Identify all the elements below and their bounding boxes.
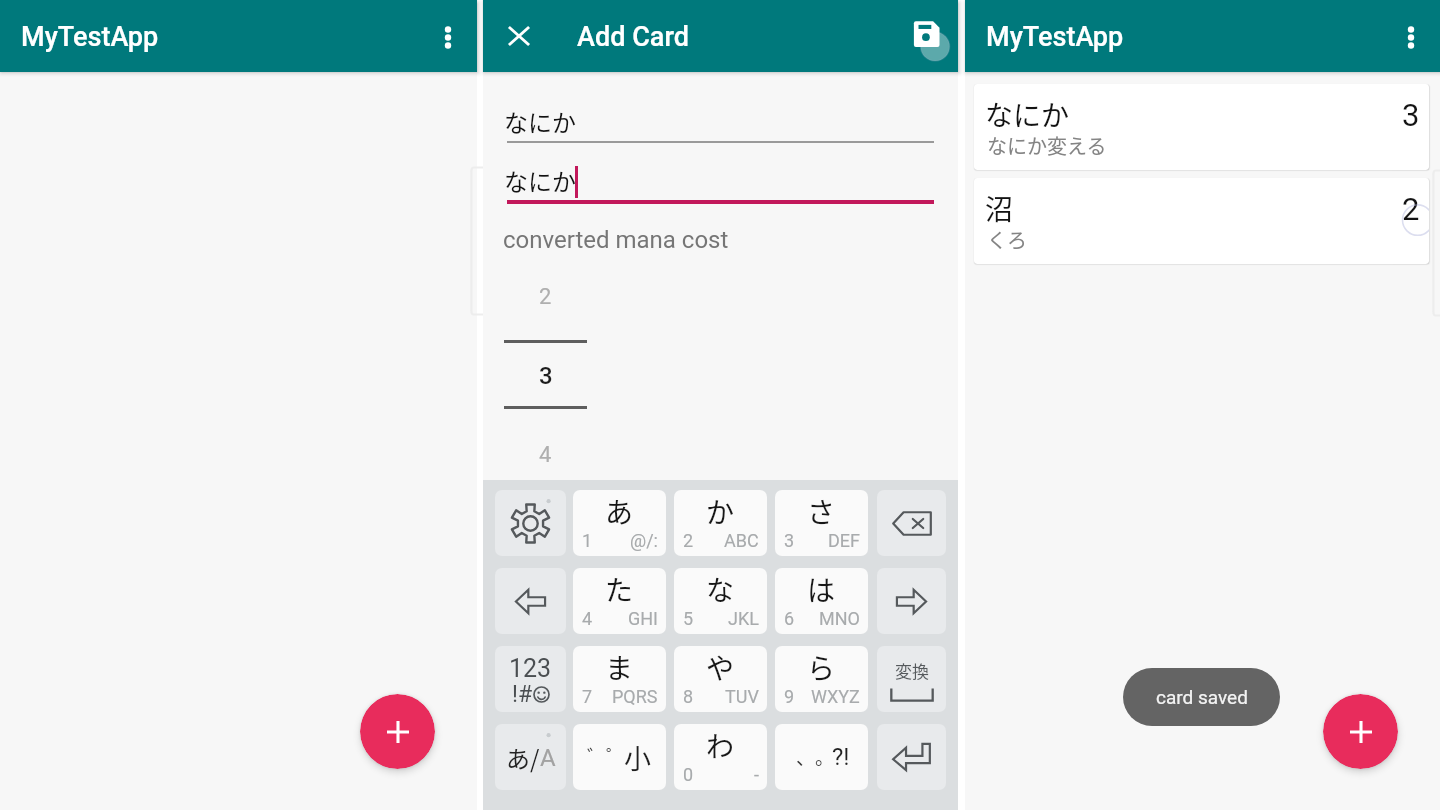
staticText: 小 <box>624 738 651 777</box>
button[interactable]: Enter <box>877 724 946 790</box>
button[interactable]: More options <box>1383 8 1439 64</box>
staticText: !# <box>512 681 533 708</box>
staticText: 0 <box>683 764 694 785</box>
staticText: TUV <box>725 686 759 707</box>
button[interactable]: Keyboard settings <box>495 490 566 556</box>
staticText: 3 <box>539 362 553 390</box>
button[interactable]: Convert <box>877 646 946 712</box>
button[interactable]: Numbers and symbols <box>495 646 566 712</box>
button[interactable]: ゛゜ <box>573 724 666 790</box>
button[interactable]: Close <box>495 12 543 60</box>
staticText: ま <box>605 647 634 688</box>
button[interactable]: 沼 <box>974 178 1429 264</box>
staticText: MyTestApp <box>21 21 159 53</box>
button[interactable]: Add <box>360 694 435 769</box>
button[interactable]: Switch input mode <box>495 724 566 790</box>
button[interactable]: や <box>674 646 767 712</box>
staticText: card saved <box>1156 686 1248 708</box>
staticText: わ <box>706 725 735 766</box>
button[interactable]: Save <box>905 15 958 71</box>
staticText: なにか <box>504 163 576 198</box>
staticText: PQRS <box>612 686 658 707</box>
button[interactable]: Move cursor right <box>877 568 946 634</box>
staticText: 4 <box>582 608 593 629</box>
staticText: くろ <box>987 225 1027 254</box>
staticText: 2 <box>683 530 694 551</box>
staticText: ゛゜ <box>587 742 626 770</box>
staticText: @/: <box>630 530 658 551</box>
button[interactable]: な <box>674 568 767 634</box>
staticText: Add Card <box>577 21 689 53</box>
staticText: ら <box>807 647 836 688</box>
button[interactable]: あ <box>573 490 666 556</box>
button[interactable]: 2 <box>504 280 587 338</box>
button[interactable]: なにか <box>974 84 1429 170</box>
staticText: な <box>706 569 735 610</box>
button[interactable]: さ <box>775 490 868 556</box>
button[interactable]: ら <box>775 646 868 712</box>
staticText: WXYZ <box>811 686 860 707</box>
staticText: - <box>754 764 759 785</box>
staticText: GHI <box>628 608 658 629</box>
staticText: あ/ <box>506 740 540 775</box>
staticText: なにか <box>985 94 1070 135</box>
button[interactable]: ま <box>573 646 666 712</box>
staticText: 3 <box>784 530 795 551</box>
staticText: 変換 <box>895 658 929 683</box>
staticText: 7 <box>582 686 593 707</box>
staticText: なにか変える <box>987 131 1107 160</box>
button[interactable]: Add <box>1323 694 1398 769</box>
staticText: MyTestApp <box>986 21 1124 53</box>
button[interactable]: Backspace <box>877 490 946 556</box>
staticText: あ <box>605 491 634 532</box>
staticText: や <box>706 647 735 688</box>
staticText: converted mana cost <box>503 226 729 254</box>
staticText: 4 <box>539 442 552 468</box>
button[interactable]: は <box>775 568 868 634</box>
staticText: MNO <box>819 608 860 629</box>
staticText: は <box>807 569 836 610</box>
staticText: A <box>540 744 556 772</box>
staticText: 123 <box>509 654 552 683</box>
staticText: 9 <box>784 686 795 707</box>
staticText: さ <box>807 491 836 532</box>
button[interactable]: か <box>674 490 767 556</box>
button[interactable]: 、。 <box>775 724 868 790</box>
button[interactable]: 3 <box>504 345 587 409</box>
staticText: 2 <box>1402 191 1420 227</box>
staticText: ABC <box>724 530 759 551</box>
staticText: 3 <box>1402 97 1420 133</box>
button[interactable]: た <box>573 568 666 634</box>
button[interactable]: Move cursor left <box>495 568 566 634</box>
staticText: 8 <box>683 686 694 707</box>
staticText: 沼 <box>985 188 1014 229</box>
staticText: 、。 <box>796 743 835 771</box>
staticText: DEF <box>828 530 860 551</box>
staticText: 1 <box>582 530 593 551</box>
staticText: 5 <box>683 608 694 629</box>
staticText: JKL <box>728 608 759 629</box>
staticText: か <box>706 491 735 532</box>
button[interactable]: 4 <box>504 411 587 471</box>
staticText: た <box>605 569 634 610</box>
staticText: 2 <box>539 284 552 310</box>
staticText: なにか <box>504 104 576 139</box>
button[interactable]: More options <box>420 8 476 64</box>
staticText: 6 <box>784 608 795 629</box>
button[interactable]: わ <box>674 724 767 790</box>
staticText: ?! <box>832 743 850 771</box>
